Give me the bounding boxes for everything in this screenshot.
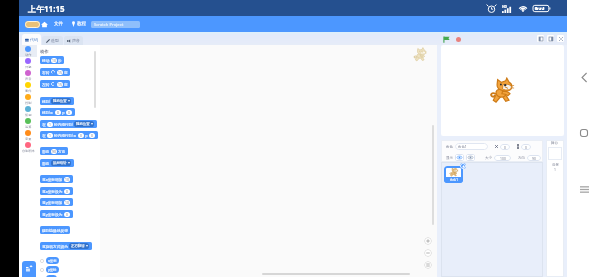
button[interactable]: 声音 [19,69,37,81]
staticText: 运算 [25,125,32,129]
button[interactable]: y坐标 [46,266,59,273]
button[interactable]: 将旋转方式设为 [40,242,92,250]
button[interactable]: 将x坐标增加 [40,175,73,183]
staticText: 秒内滑行到 x: [54,133,77,138]
staticText: 77 [537,5,543,12]
button[interactable]: 移到 [40,97,74,105]
button[interactable]: 左转 [40,80,70,88]
staticText: 角色 [446,145,453,149]
staticText: 10 [65,200,69,205]
button[interactable]: 0 [500,144,510,150]
staticText: 右转 [42,70,50,75]
button[interactable]: Add extension [22,261,36,277]
button[interactable]: Scratch Project [91,21,140,28]
button[interactable]: 侦测 [19,105,37,117]
button[interactable]: 右转 [40,68,70,76]
button[interactable]: 将x坐标设为 [40,187,73,195]
staticText: 方向 [518,156,525,160]
button[interactable]: 外观 [19,57,37,69]
button[interactable]: Stage layout 1 [547,35,554,42]
button[interactable]: 自制积木 [19,141,37,153]
button[interactable]: Home [41,21,48,28]
staticText: 度 [64,70,68,75]
button[interactable]: 动作 [19,45,37,57]
button[interactable]: Delete sprite [460,163,466,169]
staticText: 文件 [54,21,64,27]
staticText: 将x坐标增加 [42,177,63,182]
button[interactable] [548,147,562,160]
button[interactable]: 文件 [53,21,65,27]
staticText: 0 [57,110,59,115]
button[interactable]: Start [442,35,450,43]
button[interactable]: 碰到边缘就反弹 [40,226,70,234]
button[interactable]: Stage layout 2 [557,35,564,42]
button[interactable]: Hide sprite [466,154,475,161]
staticText: 方向 [58,149,66,154]
staticText: Scratch Project [94,22,124,28]
button[interactable]: Show sprite [455,154,464,161]
button[interactable]: 面向 [40,147,68,155]
staticText: 动作 [40,49,49,54]
staticText: 事件 [25,89,32,93]
staticText: x坐标 [48,258,57,263]
staticText: 将x坐标设为 [42,189,63,194]
staticText: 左右翻转 [71,244,85,248]
staticText: 15 [58,70,62,75]
button[interactable]: 0 [521,144,531,150]
staticText: 动作 [25,53,32,57]
button[interactable]: Zoom in [424,237,432,245]
staticText: 90 [532,156,536,161]
staticText: y: [62,110,65,115]
button[interactable]: 代码 [22,34,41,45]
button[interactable]: 事件 [19,81,37,93]
staticText: 移动 [42,58,50,63]
button[interactable]: SCRATCH logo [25,21,40,28]
button[interactable]: 方向 [46,275,57,277]
staticText: 角色1 [450,178,458,182]
staticText: 角色1 [458,144,467,149]
button[interactable]: 运算 [19,117,37,129]
staticText: 0 [91,133,93,138]
button[interactable]: 控制 [19,93,37,105]
staticText: 声音 [72,38,80,43]
button[interactable]: Zoom out [424,249,432,257]
button[interactable]: 100 [494,155,511,161]
button[interactable]: 变量 [19,129,37,141]
staticText: 1 [49,122,51,127]
button[interactable]: Back [573,66,595,88]
button[interactable]: 教程 [72,21,87,27]
button[interactable]: 在 [40,131,98,139]
staticText: 外观 [25,65,32,69]
staticText: 10 [65,177,69,182]
staticText: HD [502,4,508,9]
button[interactable]: 角色1 [455,143,488,150]
staticText: 变量 [25,137,32,141]
staticText: 0 [80,133,82,138]
button[interactable]: 将y坐标设为 [40,210,73,218]
button[interactable]: Recent apps [573,178,595,200]
button[interactable]: 声音 [64,36,83,45]
button[interactable]: 造型 [42,36,63,45]
button[interactable]: 将y坐标增加 [40,198,73,206]
button[interactable]: 面向 [40,159,74,167]
staticText: 0 [68,110,70,115]
button[interactable]: 移动 [40,56,64,64]
staticText: 100 [500,156,506,161]
button[interactable]: Stop [454,35,462,43]
staticText: 造型 [51,38,59,43]
button[interactable]: 移到 x: [40,108,75,116]
button[interactable]: 角色1 [444,166,463,183]
staticText: 侦测 [25,113,32,117]
staticText: 自制积木 [22,149,35,153]
button[interactable]: x坐标 [46,257,59,264]
button[interactable]: Home [573,122,595,144]
staticText: 代码 [30,37,38,42]
staticText: 面向 [42,149,50,154]
button[interactable]: Stage layout 0 [537,35,544,42]
staticText: 背景 [552,163,559,167]
button[interactable]: Reset zoom [424,261,432,269]
staticText: 面向 [42,161,50,166]
staticText: 90 [52,149,56,154]
button[interactable]: 在 [40,120,97,128]
button[interactable]: 90 [527,155,541,161]
